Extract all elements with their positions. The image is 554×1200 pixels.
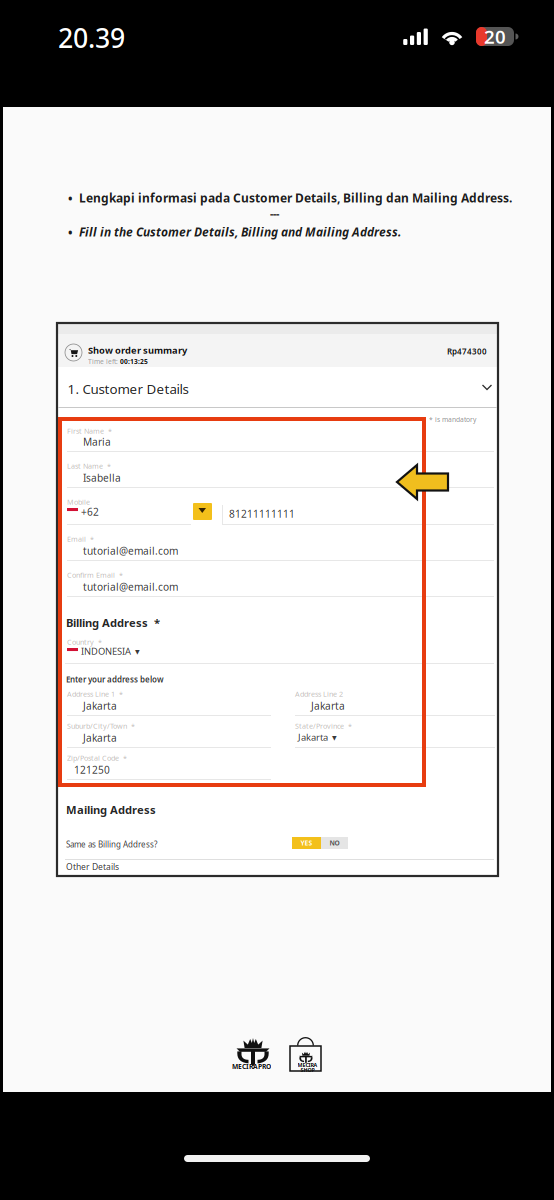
staticText: Time left:: [88, 357, 118, 366]
staticText: YES: [300, 839, 312, 847]
staticText: Maria: [83, 435, 111, 449]
staticText: INDONESIA ▾: [81, 645, 140, 657]
staticText: Isabella: [83, 471, 121, 485]
staticText: MECIRA: [297, 1061, 317, 1069]
staticText: Jakarta ▾: [298, 731, 337, 743]
button[interactable]: Show order summary: [88, 344, 187, 366]
staticText: Lengkapi informasi pada Customer Details…: [79, 190, 512, 206]
staticText: Country *: [67, 637, 102, 647]
staticText: First Name *: [67, 426, 112, 436]
button[interactable]: 1. Customer Details: [58, 368, 496, 407]
staticText: 00:13:25: [120, 357, 148, 366]
staticText: Email *: [67, 534, 94, 544]
staticText: Billing Address *: [66, 615, 160, 630]
staticText: MECIRAPRO: [232, 1062, 271, 1071]
staticText: •: [68, 225, 73, 241]
staticText: State/Province *: [295, 721, 352, 731]
staticText: Zip/Postal Code *: [67, 753, 127, 763]
staticText: •: [68, 191, 73, 207]
staticText: 20: [484, 24, 506, 49]
button[interactable]: YES: [292, 837, 348, 849]
staticText: Jakarta: [83, 731, 117, 745]
staticText: Mailing Address: [66, 802, 156, 817]
staticText: Fill in the Customer Details, Billing an…: [79, 224, 401, 240]
staticText: Mobile: [67, 497, 90, 507]
staticText: Address Line 1 *: [67, 689, 123, 699]
staticText: Jakarta: [83, 699, 117, 713]
staticText: 20.39: [58, 20, 125, 55]
staticText: * is mandatory: [429, 415, 476, 424]
staticText: Enter your address below: [66, 674, 164, 685]
staticText: Address Line 2: [295, 689, 343, 699]
staticText: Rp474300: [447, 346, 487, 357]
staticText: 81211111111: [229, 507, 295, 521]
staticText: 1. Customer Details: [67, 380, 188, 398]
staticText: ---: [270, 206, 279, 220]
staticText: tutorial@email.com: [83, 580, 178, 594]
staticText: Other Details: [66, 861, 119, 873]
staticText: Suburb/City/Town *: [67, 721, 135, 731]
staticText: NO: [329, 839, 339, 847]
staticText: tutorial@email.com: [83, 544, 178, 558]
staticText: 121250: [74, 763, 110, 777]
staticText: SHOP: [300, 1066, 314, 1074]
staticText: Jakarta: [311, 699, 345, 713]
staticText: Same as Billing Address?: [66, 839, 157, 850]
staticText: Last Name *: [67, 461, 111, 471]
staticText: Confirm Email *: [67, 570, 123, 580]
staticText: +62: [81, 505, 99, 519]
staticText: Show order summary: [88, 344, 187, 356]
